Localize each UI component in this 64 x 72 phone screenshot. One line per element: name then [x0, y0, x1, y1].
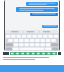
button[interactable]: Chat message [26, 2, 58, 6]
button[interactable]: On-screen keyboard [5, 30, 59, 51]
button[interactable]: Chat message [30, 13, 58, 16]
button[interactable]: Chat message [16, 7, 58, 12]
button[interactable]: Chat message [42, 25, 58, 28]
